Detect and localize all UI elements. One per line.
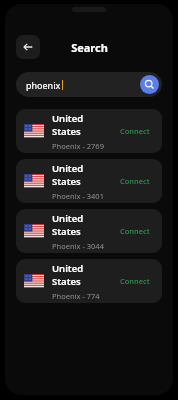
staticText: Connect bbox=[120, 126, 150, 136]
staticText: Phoenix - 3401 bbox=[52, 191, 104, 201]
button[interactable]: Search bbox=[140, 75, 159, 94]
button[interactable]: Connect bbox=[112, 270, 158, 292]
staticText: Search bbox=[71, 40, 108, 55]
button[interactable]: Connect bbox=[112, 220, 158, 242]
staticText: Connect bbox=[120, 226, 150, 236]
button[interactable]: Connect bbox=[112, 120, 158, 142]
staticText: United States bbox=[52, 212, 112, 238]
staticText: Phoenix - 3044 bbox=[52, 241, 104, 251]
staticText: phoenix bbox=[26, 79, 61, 91]
staticText: Phoenix - 2769 bbox=[52, 141, 104, 151]
staticText: United States bbox=[52, 162, 112, 188]
button[interactable]: United States bbox=[16, 159, 162, 203]
staticText: Connect bbox=[120, 276, 150, 286]
staticText: United States bbox=[52, 262, 112, 288]
staticText: Phoenix - 774 bbox=[52, 291, 100, 301]
button[interactable]: phoenix bbox=[16, 72, 162, 97]
button[interactable]: United States bbox=[16, 209, 162, 253]
button[interactable]: Back bbox=[16, 35, 40, 59]
button[interactable]: Connect bbox=[112, 170, 158, 192]
staticText: United States bbox=[52, 112, 112, 138]
button[interactable]: United States bbox=[16, 259, 162, 303]
staticText: Connect bbox=[120, 176, 150, 186]
button[interactable]: United States bbox=[16, 109, 162, 153]
